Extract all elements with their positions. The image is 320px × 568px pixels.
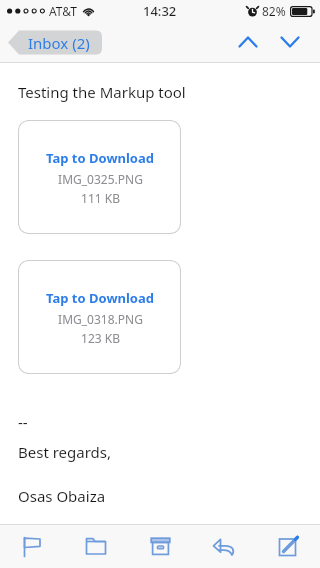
button[interactable]: Tap to Download (18, 260, 181, 374)
staticText: 82% (262, 3, 286, 19)
button[interactable]: Move to folder (64, 525, 128, 568)
button[interactable]: Next message (272, 24, 308, 60)
staticText: Testing the Markup tool (18, 82, 186, 102)
staticText: Tap to Download (46, 289, 154, 307)
staticText: Osas Obaiza (18, 486, 106, 506)
button[interactable]: Compose (256, 525, 320, 568)
button[interactable]: Tap to Download (18, 120, 181, 234)
button[interactable]: Archive (128, 525, 192, 568)
staticText: IMG_0318.PNG (58, 311, 143, 327)
staticText: 111 KB (81, 190, 120, 206)
staticText: Tap to Download (46, 149, 154, 167)
staticText: Best regards, (18, 442, 112, 462)
staticText: IMG_0325.PNG (58, 171, 143, 187)
button[interactable]: Reply (192, 525, 256, 568)
staticText: -- (18, 412, 28, 432)
button[interactable]: Flag (0, 525, 64, 568)
staticText: Inbox (2) (28, 33, 90, 53)
staticText: 123 KB (81, 330, 120, 346)
staticText: 14:32 (143, 2, 177, 20)
button[interactable]: Previous message (230, 24, 266, 60)
button[interactable]: Inbox (2) (8, 29, 102, 56)
staticText: AT&T (49, 3, 77, 19)
